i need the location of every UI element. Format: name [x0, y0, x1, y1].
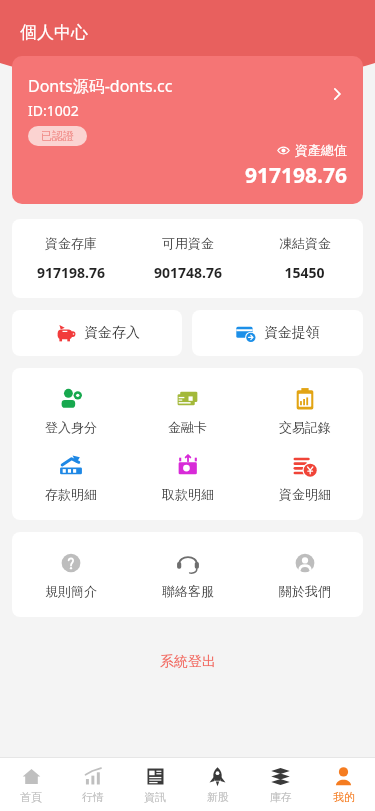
staticText: 資金明細	[279, 486, 331, 502]
button[interactable]: 系統登出	[144, 647, 232, 677]
button[interactable]: 資金存庫	[12, 235, 129, 282]
button[interactable]: 聯絡客服	[129, 550, 246, 599]
staticText: 關於我們	[279, 583, 331, 599]
staticText: 庫存	[270, 790, 292, 804]
button[interactable]: 資金存入	[12, 310, 182, 356]
button[interactable]: 可用資金	[129, 235, 246, 282]
staticText: 917198.76	[37, 263, 105, 282]
staticText: 我的	[333, 790, 355, 804]
button[interactable]: 我的	[312, 758, 375, 811]
button[interactable]: 金融卡	[129, 386, 246, 435]
staticText: 資金存庫	[45, 235, 97, 251]
staticText: 凍結資金	[279, 235, 331, 251]
staticText: 資產總值	[295, 142, 347, 158]
staticText: 917198.76	[245, 161, 347, 190]
button[interactable]: 資金提領	[192, 310, 363, 356]
staticText: 金融卡	[168, 419, 207, 435]
staticText: 已認證	[41, 129, 74, 143]
button[interactable]: 凍結資金	[246, 235, 363, 282]
staticText: 登入身分	[45, 419, 97, 435]
button[interactable]: 新股	[186, 758, 249, 811]
button[interactable]: 行情	[62, 758, 124, 811]
button[interactable]: 存款明細	[12, 453, 129, 502]
staticText: 個人中心	[20, 22, 88, 43]
button[interactable]: 交易記錄	[246, 386, 363, 435]
staticText: 901748.76	[154, 263, 222, 282]
staticText: 存款明細	[45, 486, 97, 502]
button[interactable]: 庫存	[249, 758, 312, 811]
button[interactable]: 關於我們	[246, 550, 363, 599]
staticText: 資訊	[144, 790, 166, 804]
staticText: 15450	[284, 263, 325, 282]
staticText: 行情	[82, 790, 104, 804]
button[interactable]: Donts源码-donts.cc	[12, 56, 363, 204]
button[interactable]: 取款明細	[129, 453, 246, 502]
staticText: 交易記錄	[279, 419, 331, 435]
staticText: 系統登出	[160, 653, 216, 671]
button[interactable]: 資訊	[124, 758, 186, 811]
button[interactable]: 資金明細	[246, 453, 363, 502]
staticText: 首頁	[20, 790, 42, 804]
staticText: Donts源码-donts.cc	[28, 75, 173, 97]
staticText: 資金提領	[264, 324, 320, 342]
other: Open profile	[325, 82, 349, 106]
button[interactable]: 登入身分	[12, 386, 129, 435]
staticText: 新股	[207, 790, 229, 804]
button[interactable]: 規則簡介	[12, 550, 129, 599]
button[interactable]: 首頁	[0, 758, 62, 811]
staticText: 資金存入	[84, 324, 140, 342]
staticText: 可用資金	[162, 235, 214, 251]
staticText: 取款明細	[162, 486, 214, 502]
staticText: ID:1002	[28, 101, 79, 120]
staticText: 規則簡介	[45, 583, 97, 599]
staticText: 聯絡客服	[162, 583, 214, 599]
